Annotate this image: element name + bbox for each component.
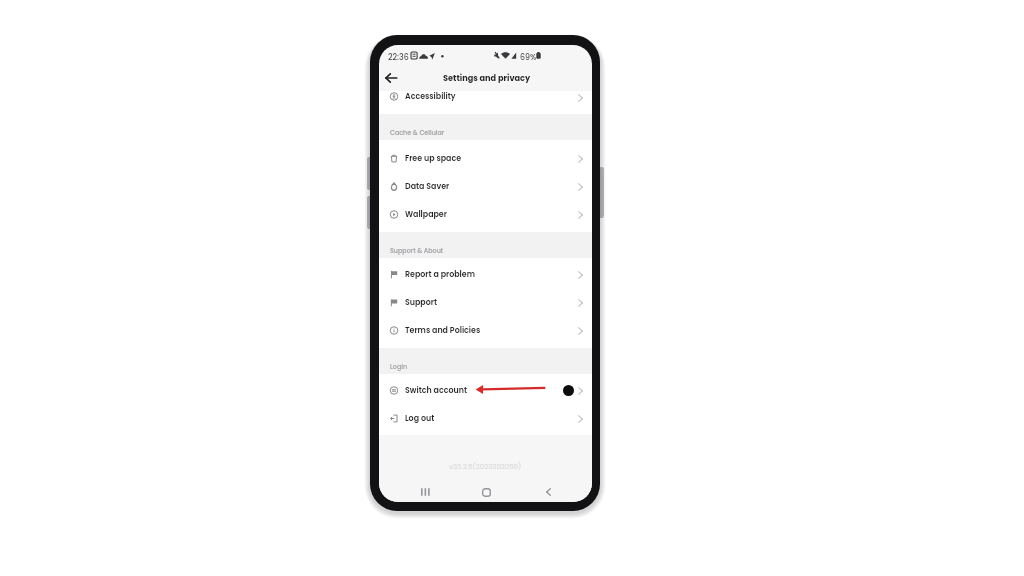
staticText: Switch account <box>405 385 467 396</box>
staticText: Settings and privacy <box>443 72 531 83</box>
staticText: Support <box>405 297 438 308</box>
staticText: 69% <box>520 52 537 63</box>
staticText: 22:36 <box>388 52 409 63</box>
button[interactable]: Log out <box>379 405 592 433</box>
button[interactable]: Support <box>379 289 592 317</box>
button[interactable]: Back <box>535 481 561 502</box>
staticText: Data Saver <box>405 181 450 192</box>
staticText: Wallpaper <box>405 209 447 220</box>
button[interactable]: Recent apps <box>412 481 438 502</box>
staticText: Accessibility <box>405 91 456 102</box>
button[interactable]: Free up space <box>379 145 592 173</box>
button[interactable]: Back <box>381 68 400 87</box>
staticText: Login <box>390 362 408 371</box>
button[interactable]: Data Saver <box>379 173 592 201</box>
staticText: Terms and Policies <box>405 325 481 336</box>
staticText: Cache & Cellular <box>390 128 445 137</box>
staticText: Free up space <box>405 153 462 164</box>
button[interactable]: Accessibility <box>379 86 592 109</box>
button[interactable]: Wallpaper <box>379 201 592 229</box>
staticText: Log out <box>405 413 435 424</box>
button[interactable]: Switch account <box>379 377 592 405</box>
staticText: v33.2.5(2023302050) <box>449 462 522 472</box>
staticText: Report a problem <box>405 269 475 280</box>
button[interactable]: Terms and Policies <box>379 317 592 345</box>
staticText: Support & About <box>390 246 444 255</box>
button[interactable]: Report a problem <box>379 261 592 289</box>
button[interactable]: Home <box>473 481 499 502</box>
